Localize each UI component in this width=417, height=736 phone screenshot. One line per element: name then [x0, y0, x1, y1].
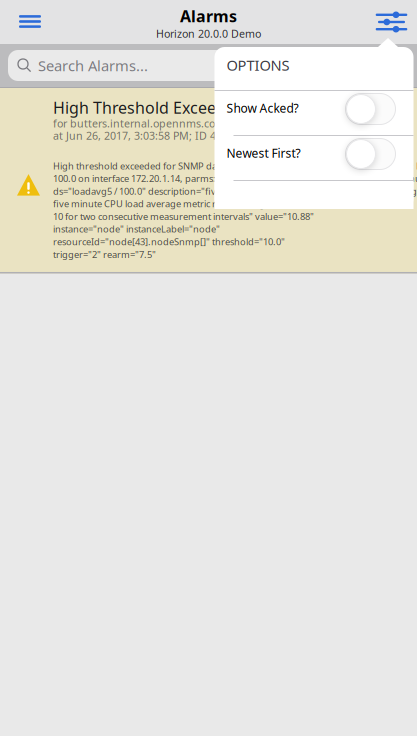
button[interactable]: Show Acked?: [214, 91, 413, 135]
staticText: Show Acked?: [226, 100, 298, 116]
staticText: for butters.internal.opennms.com: [53, 116, 225, 130]
staticText: Search Alarms...: [38, 56, 148, 75]
staticText: Alarms: [180, 5, 237, 26]
staticText: Newest First?: [226, 145, 300, 161]
staticText: High threshold exceeded for SNMP datasou…: [53, 160, 417, 172]
staticText: 100.0 on interface 172.20.1.14, parms: l…: [53, 172, 417, 185]
button[interactable]: Menu: [0, 0, 57, 44]
staticText: High Threshold Exceeded: [53, 97, 245, 118]
staticText: five minute CPU load average metric reac…: [53, 197, 308, 210]
staticText: trigger="2" rearm="7.5": [53, 248, 156, 260]
staticText: OPTIONS: [226, 55, 289, 75]
staticText: at Jun 26, 2017, 3:03:58 PM; ID 43: [53, 128, 222, 143]
staticText: resourceId="node[43].nodeSnmp[]" thresho…: [53, 235, 285, 248]
staticText: Horizon 20.0.0 Demo: [156, 26, 261, 41]
staticText: instance="node" instanceLabel="node": [53, 223, 220, 235]
staticText: ds="loadavg5 / 100.0" description="five …: [53, 185, 417, 197]
staticText: 10 for two consecutive measurement inter…: [53, 210, 314, 223]
button[interactable]: Options: [362, 0, 417, 44]
button[interactable]: Newest First?: [214, 136, 413, 180]
